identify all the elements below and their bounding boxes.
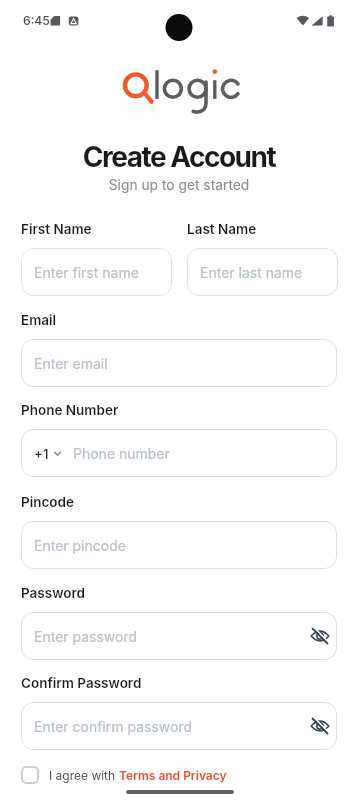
button[interactable]: Enter first name — [21, 248, 172, 296]
staticText: Enter email — [34, 355, 108, 372]
staticText: Sign up to get started — [0, 177, 358, 194]
staticText: Enter confirm password — [34, 718, 192, 735]
staticText: Email — [21, 312, 57, 328]
staticText: +1 — [34, 446, 49, 462]
staticText: First Name — [21, 221, 92, 237]
staticText: Confirm Password — [21, 675, 142, 691]
staticText: Phone number — [73, 445, 170, 462]
staticText: Phone Number — [21, 402, 119, 418]
button[interactable]: +1 — [21, 429, 337, 477]
staticText: Create Account — [0, 140, 358, 174]
staticText: Enter last name — [200, 264, 303, 281]
button[interactable]: Enter last name — [187, 248, 338, 296]
button[interactable]: Enter pincode — [21, 521, 337, 569]
staticText: Pincode — [21, 494, 74, 510]
staticText: 6:45 — [23, 13, 50, 28]
staticText: Password — [21, 585, 86, 601]
staticText: Enter password — [34, 628, 138, 645]
button[interactable]: Enter password — [21, 612, 337, 660]
staticText: Enter first name — [34, 264, 139, 281]
button[interactable]: I agree with — [21, 766, 227, 784]
staticText: Last Name — [187, 221, 257, 237]
button[interactable]: Enter email — [21, 339, 337, 387]
staticText: Terms and Privacy — [119, 768, 227, 783]
button[interactable]: Enter confirm password — [21, 702, 337, 750]
staticText: Enter pincode — [34, 537, 126, 554]
staticText: I agree with — [49, 768, 119, 783]
